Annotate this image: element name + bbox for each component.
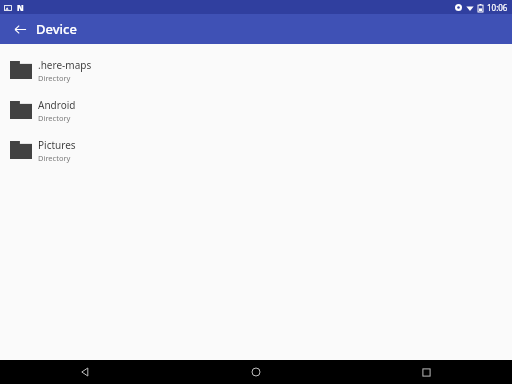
button[interactable]: Home: [170, 360, 341, 384]
staticText: N: [17, 2, 24, 13]
staticText: Directory: [38, 153, 71, 163]
staticText: Pictures: [38, 138, 76, 152]
button[interactable]: Android: [0, 90, 512, 130]
staticText: Android: [38, 98, 76, 112]
button[interactable]: Pictures: [0, 130, 512, 170]
button[interactable]: Back: [8, 17, 32, 41]
button[interactable]: Recent apps: [341, 360, 512, 384]
staticText: Directory: [38, 113, 71, 123]
staticText: 10:06: [487, 2, 508, 13]
staticText: Device: [36, 20, 77, 38]
staticText: Directory: [38, 73, 71, 83]
button[interactable]: Back: [0, 360, 170, 384]
button[interactable]: .here-maps: [0, 50, 512, 90]
staticText: .here-maps: [38, 58, 92, 72]
